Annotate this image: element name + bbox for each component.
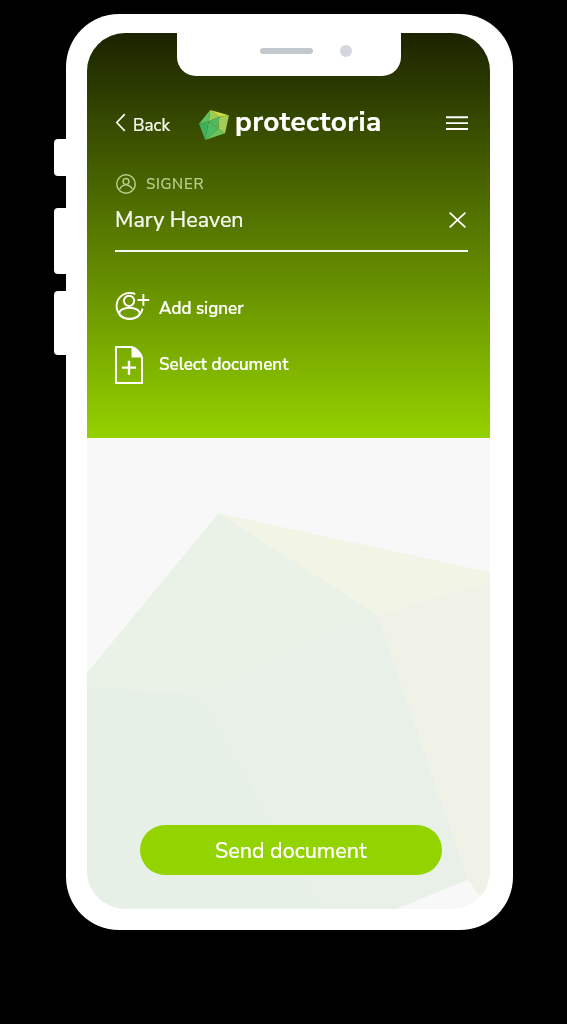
button[interactable]: Back	[111, 107, 175, 137]
staticText: Mary Heaven	[115, 205, 244, 234]
button[interactable]: Select document	[109, 339, 379, 387]
staticText: Back	[133, 114, 170, 137]
staticText: Send document	[215, 836, 367, 865]
staticText: Add signer	[159, 297, 244, 320]
staticText: SIGNER	[146, 174, 205, 194]
button[interactable]: Menu	[437, 107, 477, 139]
button[interactable]: Clear signer	[439, 203, 475, 237]
staticText: Select document	[159, 353, 289, 376]
button[interactable]: Add signer	[109, 285, 339, 327]
staticText: protectoria	[235, 103, 382, 141]
button[interactable]: Send document	[140, 825, 442, 875]
